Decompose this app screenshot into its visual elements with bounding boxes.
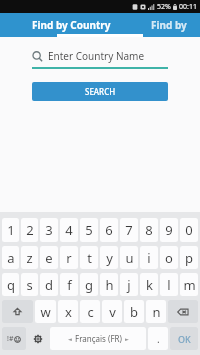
button[interactable]: b bbox=[124, 300, 144, 323]
staticText: c bbox=[87, 303, 94, 321]
button[interactable]: 2 bbox=[21, 218, 38, 242]
staticText: n bbox=[152, 303, 161, 321]
button[interactable]: m bbox=[180, 273, 198, 296]
staticText: 52% bbox=[157, 2, 171, 12]
staticText: . bbox=[157, 332, 160, 346]
staticText: r bbox=[66, 249, 72, 267]
staticText: 9 bbox=[165, 221, 173, 239]
staticText: 4 bbox=[65, 221, 73, 239]
button[interactable]: s bbox=[21, 273, 38, 296]
staticText: l bbox=[167, 276, 171, 294]
button[interactable]: 5 bbox=[80, 218, 98, 242]
button[interactable]: c bbox=[80, 300, 100, 323]
button[interactable]: w bbox=[35, 300, 56, 323]
button[interactable]: Find by Country bbox=[0, 13, 143, 37]
button[interactable]: r bbox=[60, 246, 78, 269]
button[interactable]: g bbox=[80, 273, 98, 296]
staticText: 2 bbox=[26, 221, 34, 239]
staticText: q bbox=[7, 276, 15, 294]
button[interactable]: 6 bbox=[100, 218, 118, 242]
button[interactable]: OK bbox=[170, 327, 198, 350]
staticText: h bbox=[105, 276, 114, 294]
staticText: ◄ bbox=[68, 336, 72, 342]
button[interactable]: o bbox=[160, 246, 178, 269]
staticText: 1 bbox=[7, 221, 15, 239]
button[interactable]: 4 bbox=[60, 218, 78, 242]
button[interactable]: q bbox=[2, 273, 19, 296]
staticText: !# bbox=[7, 334, 14, 344]
staticText: j bbox=[127, 276, 131, 294]
staticText: w bbox=[40, 303, 51, 321]
button[interactable]: Shift bbox=[2, 300, 33, 323]
button[interactable]: Find by bbox=[143, 13, 200, 37]
button[interactable]: 9 bbox=[160, 218, 178, 242]
staticText: 6 bbox=[105, 221, 113, 239]
button[interactable]: h bbox=[100, 273, 118, 296]
button[interactable]: y bbox=[100, 246, 118, 269]
staticText: y bbox=[106, 249, 113, 267]
staticText: 5 bbox=[85, 221, 93, 239]
button[interactable]: k bbox=[140, 273, 158, 296]
staticText: u bbox=[125, 249, 134, 267]
staticText: v bbox=[109, 303, 116, 321]
staticText: o bbox=[165, 249, 173, 267]
staticText: g bbox=[85, 276, 93, 294]
staticText: Enter Country Name bbox=[48, 49, 145, 63]
button[interactable]: u bbox=[120, 246, 138, 269]
button[interactable]: Keyboard settings bbox=[28, 327, 48, 350]
staticText: x bbox=[65, 303, 72, 321]
button[interactable]: 0 bbox=[180, 218, 198, 242]
button[interactable]: a bbox=[2, 246, 19, 269]
staticText: z bbox=[26, 249, 33, 267]
staticText: Find by Country bbox=[32, 18, 111, 32]
button[interactable]: Symbols and emoji bbox=[2, 327, 26, 350]
button[interactable]: z bbox=[21, 246, 38, 269]
staticText: d bbox=[45, 276, 53, 294]
button[interactable]: p bbox=[180, 246, 198, 269]
staticText: a bbox=[7, 249, 15, 267]
staticText: i bbox=[147, 249, 151, 267]
button[interactable]: v bbox=[102, 300, 122, 323]
button[interactable]: Backspace bbox=[168, 300, 198, 323]
staticText: SEARCH bbox=[85, 86, 116, 97]
button[interactable]: i bbox=[140, 246, 158, 269]
button[interactable]: ◄ bbox=[50, 327, 146, 350]
button[interactable]: 3 bbox=[40, 218, 58, 242]
button[interactable]: l bbox=[160, 273, 178, 296]
button[interactable]: SEARCH bbox=[32, 82, 168, 101]
button[interactable]: j bbox=[120, 273, 138, 296]
button[interactable]: Period bbox=[148, 327, 168, 350]
button[interactable]: 7 bbox=[120, 218, 138, 242]
staticText: 7 bbox=[125, 221, 133, 239]
staticText: t bbox=[87, 249, 92, 267]
staticText: OK bbox=[178, 333, 191, 345]
staticText: s bbox=[26, 276, 33, 294]
button[interactable]: n bbox=[146, 300, 166, 323]
button[interactable]: 8 bbox=[140, 218, 158, 242]
button[interactable]: t bbox=[80, 246, 98, 269]
staticText: 00:11 bbox=[179, 2, 197, 12]
staticText: 8 bbox=[145, 221, 153, 239]
staticText: 0 bbox=[185, 221, 193, 239]
staticText: k bbox=[146, 276, 153, 294]
staticText: ► bbox=[125, 336, 129, 342]
staticText: Français (FR) bbox=[75, 333, 122, 344]
staticText: e bbox=[45, 249, 53, 267]
staticText: b bbox=[130, 303, 138, 321]
button[interactable]: x bbox=[58, 300, 78, 323]
button[interactable]: f bbox=[60, 273, 78, 296]
staticText: p bbox=[185, 249, 193, 267]
button[interactable]: 1 bbox=[2, 218, 19, 242]
staticText: m bbox=[183, 276, 196, 294]
staticText: Find by bbox=[151, 18, 187, 32]
button[interactable]: d bbox=[40, 273, 58, 296]
button[interactable]: e bbox=[40, 246, 58, 269]
staticText: f bbox=[67, 276, 72, 294]
staticText: 3 bbox=[45, 221, 53, 239]
